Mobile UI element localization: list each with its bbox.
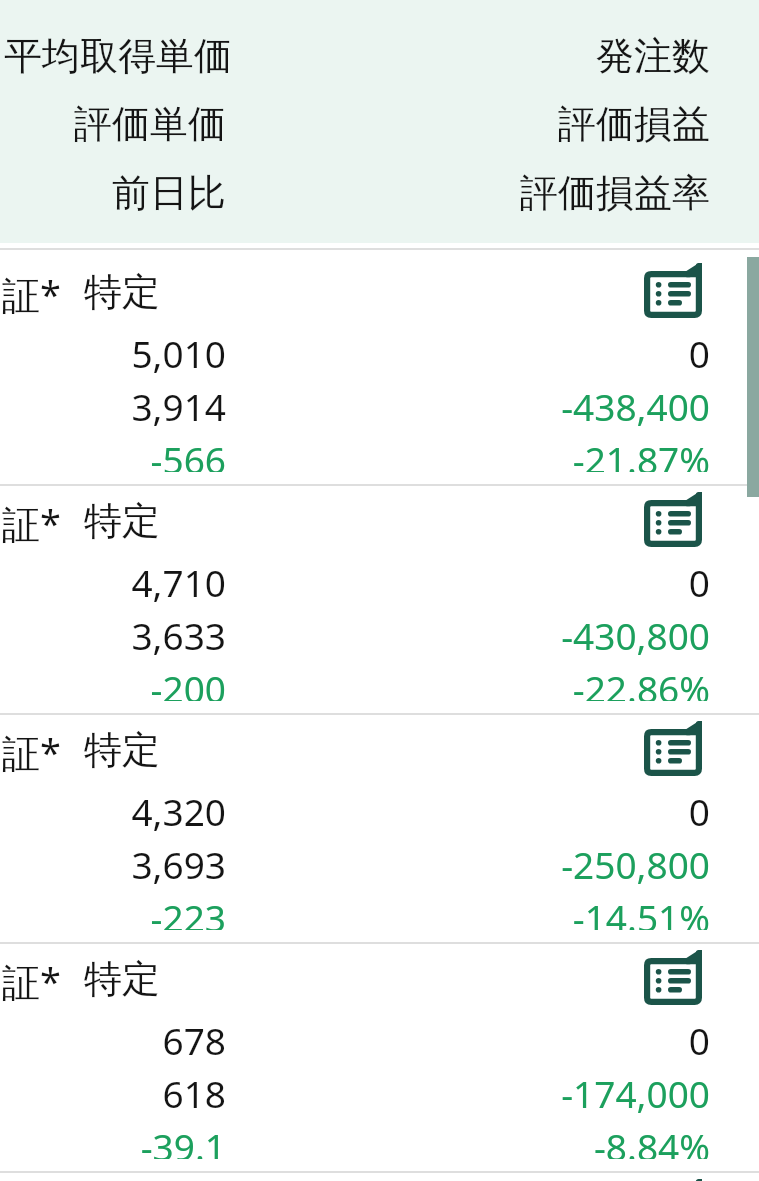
staticText: -223 bbox=[0, 892, 226, 942]
staticText: -200 bbox=[0, 663, 226, 713]
staticText: -174,000 bbox=[0, 1068, 710, 1118]
staticText: -438,400 bbox=[0, 381, 710, 431]
staticText: -566 bbox=[0, 434, 226, 484]
button[interactable]: Position 4,710 bbox=[0, 472, 759, 701]
staticText: 3,693 bbox=[0, 839, 226, 889]
staticText: 618 bbox=[0, 1068, 226, 1118]
button[interactable]: Position 1,190 bbox=[0, 1159, 759, 1181]
staticText: -250,800 bbox=[0, 839, 710, 889]
button[interactable]: Position 4,320 bbox=[0, 701, 759, 930]
staticText: 4,710 bbox=[0, 557, 226, 607]
staticText: 証* bbox=[2, 497, 61, 549]
staticText: 特定 bbox=[84, 497, 160, 545]
staticText: 3,914 bbox=[0, 381, 226, 431]
staticText: 前日比 bbox=[0, 169, 226, 217]
staticText: 特定 bbox=[84, 726, 160, 774]
button[interactable]: Order details bbox=[635, 484, 711, 553]
button[interactable]: Order details bbox=[635, 713, 711, 782]
staticText: -430,800 bbox=[0, 610, 710, 660]
staticText: -8.84% bbox=[0, 1121, 710, 1171]
staticText: -21.87% bbox=[0, 434, 710, 484]
staticText: -14.51% bbox=[0, 892, 710, 942]
staticText: 発注数 bbox=[0, 32, 710, 80]
staticText: 平均取得単価 bbox=[4, 32, 232, 80]
staticText: 0 bbox=[0, 1015, 710, 1065]
button[interactable]: Order details bbox=[635, 1171, 711, 1181]
staticText: 証* bbox=[2, 268, 61, 320]
button[interactable]: Order details bbox=[635, 942, 711, 1011]
staticText: 5,010 bbox=[0, 328, 226, 378]
staticText: 678 bbox=[0, 1015, 226, 1065]
staticText: 評価損益 bbox=[0, 100, 710, 148]
staticText: 4,320 bbox=[0, 786, 226, 836]
staticText: 証* bbox=[2, 955, 61, 1007]
staticText: 評価損益率 bbox=[0, 169, 710, 217]
staticText: 0 bbox=[0, 557, 710, 607]
staticText: 評価単価 bbox=[0, 100, 226, 148]
staticText: 特定 bbox=[84, 268, 160, 316]
staticText: -22.86% bbox=[0, 663, 710, 713]
button[interactable]: Position 678 bbox=[0, 930, 759, 1159]
staticText: 0 bbox=[0, 328, 710, 378]
staticText: -39.1 bbox=[0, 1121, 226, 1171]
staticText: 3,633 bbox=[0, 610, 226, 660]
button[interactable]: Position 5,010 bbox=[0, 243, 759, 472]
button[interactable]: Order details bbox=[635, 255, 711, 324]
staticText: 0 bbox=[0, 786, 710, 836]
staticText: 特定 bbox=[84, 955, 160, 1003]
staticText: 証* bbox=[2, 726, 61, 778]
